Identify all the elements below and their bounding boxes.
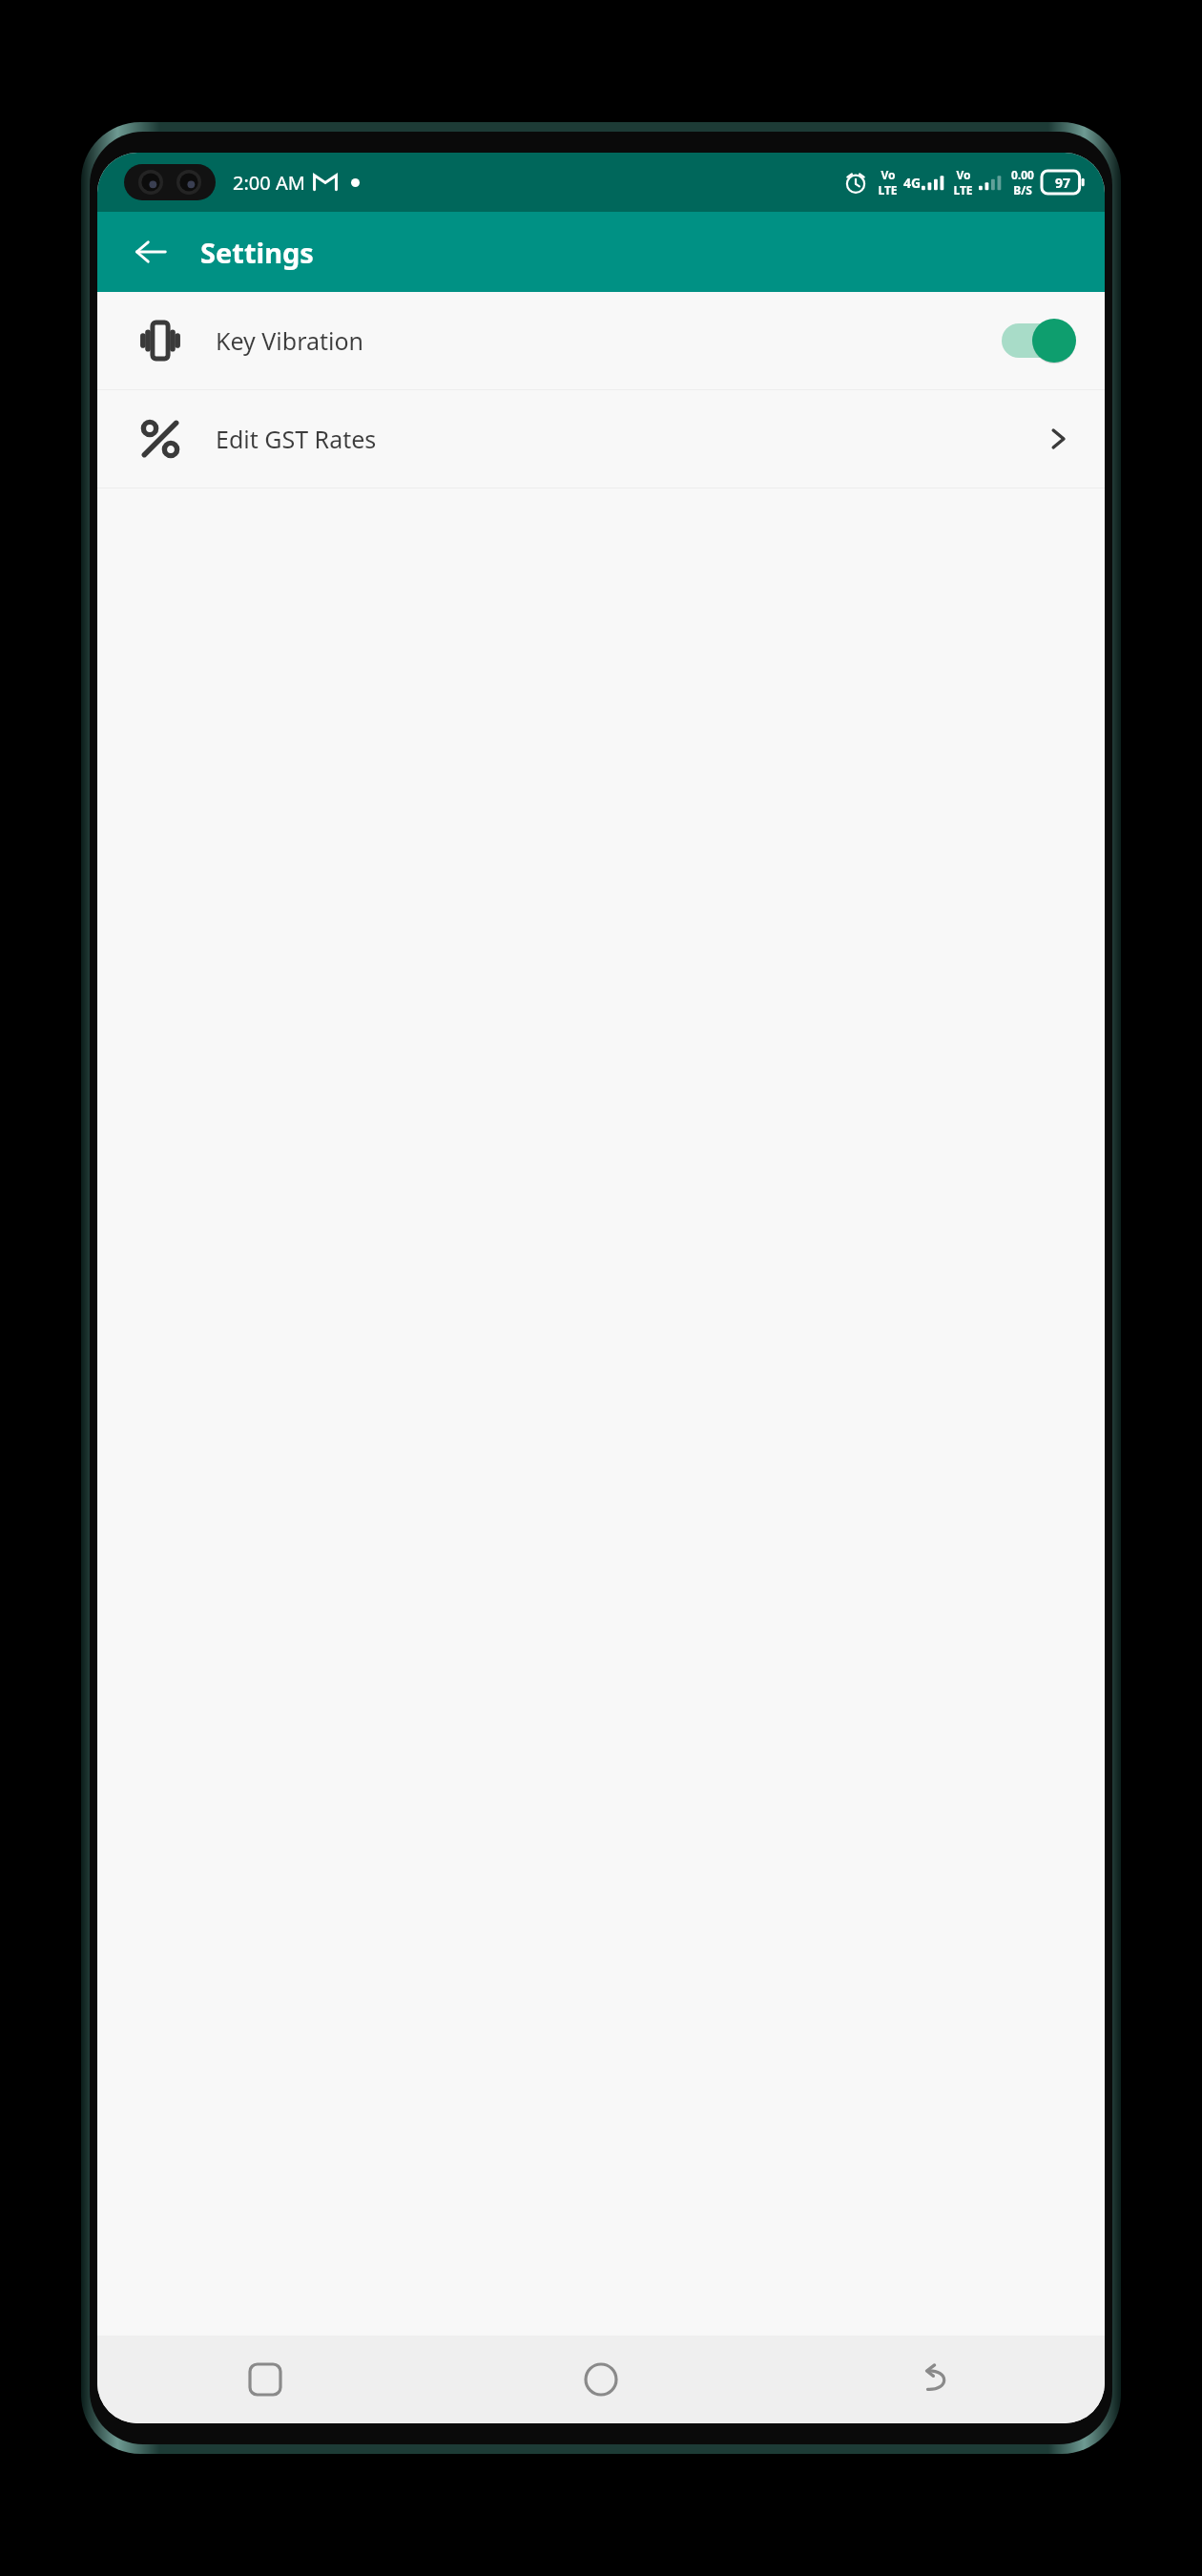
button[interactable]: Key Vibration — [97, 292, 1105, 389]
staticText: LTE — [878, 182, 898, 197]
button[interactable]: Home — [433, 2336, 769, 2423]
staticText: B/S — [1013, 182, 1032, 197]
staticText: 4G — [903, 174, 922, 192]
staticText: 2:00 AM — [233, 170, 305, 196]
staticText: Vo — [956, 167, 971, 182]
staticText: Vo — [881, 167, 896, 182]
staticText: Edit GST Rates — [216, 423, 377, 455]
button[interactable]: Key Vibration toggle — [998, 316, 1076, 365]
button[interactable]: Edit GST Rates — [97, 390, 1105, 488]
button[interactable]: Recents — [97, 2336, 433, 2423]
button[interactable]: Back — [769, 2336, 1105, 2423]
staticText: LTE — [953, 182, 973, 197]
staticText: 97 — [1055, 174, 1071, 192]
staticText: Key Vibration — [216, 324, 364, 357]
button[interactable]: Back — [122, 223, 179, 280]
staticText: 0.00 — [1011, 167, 1034, 182]
staticText: Settings — [200, 234, 314, 271]
